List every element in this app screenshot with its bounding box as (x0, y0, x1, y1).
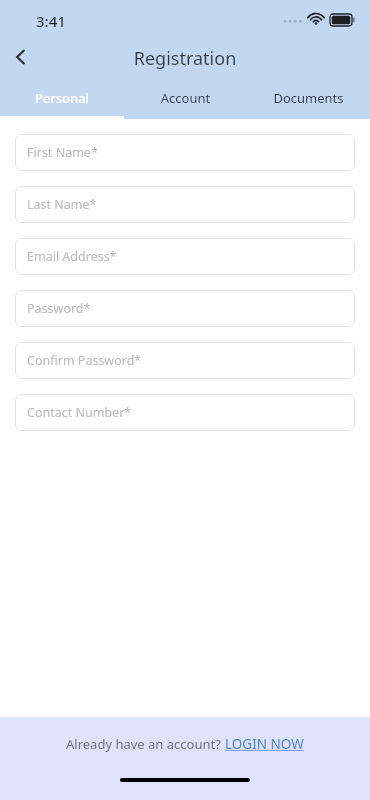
staticText: Documents (247, 89, 370, 107)
staticText: 3:41 (36, 11, 66, 31)
staticText: Password* (27, 300, 91, 317)
button[interactable]: Already have an account? (66, 735, 304, 753)
button[interactable]: Password* (15, 290, 355, 327)
button[interactable]: Confirm Password* (15, 342, 355, 379)
staticText: Contact Number* (27, 404, 132, 421)
staticText: Last Name* (27, 196, 97, 213)
staticText: Confirm Password* (27, 352, 142, 369)
button[interactable]: Account (124, 86, 247, 119)
button[interactable]: Personal (0, 86, 124, 119)
button[interactable]: Documents (247, 86, 370, 119)
staticText: Registration (0, 46, 370, 71)
button[interactable]: Email Address* (15, 238, 355, 275)
button[interactable]: Last Name* (15, 186, 355, 223)
staticText: Personal (0, 89, 124, 107)
staticText: Account (124, 89, 247, 107)
staticText: Already have an account? (66, 735, 225, 753)
button[interactable]: Back (4, 40, 38, 74)
button[interactable]: First Name* (15, 134, 355, 171)
staticText: Email Address* (27, 248, 117, 265)
staticText: LOGIN NOW (225, 735, 304, 753)
button[interactable]: Contact Number* (15, 394, 355, 431)
staticText: First Name* (27, 144, 98, 161)
